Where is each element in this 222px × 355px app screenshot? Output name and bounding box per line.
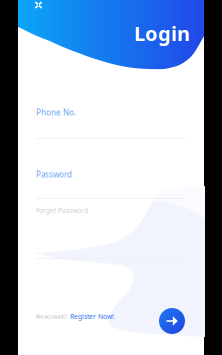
button[interactable]: Register Now! xyxy=(70,312,114,321)
staticText: Forget Password xyxy=(36,206,88,215)
staticText: Register Now! xyxy=(70,312,114,321)
button[interactable]: Close xyxy=(27,0,50,14)
staticText: Phone No. xyxy=(36,107,76,118)
staticText: No account? xyxy=(36,313,66,320)
staticText: Login xyxy=(134,20,190,47)
button[interactable]: Continue xyxy=(159,308,185,334)
staticText: Password xyxy=(36,169,72,180)
